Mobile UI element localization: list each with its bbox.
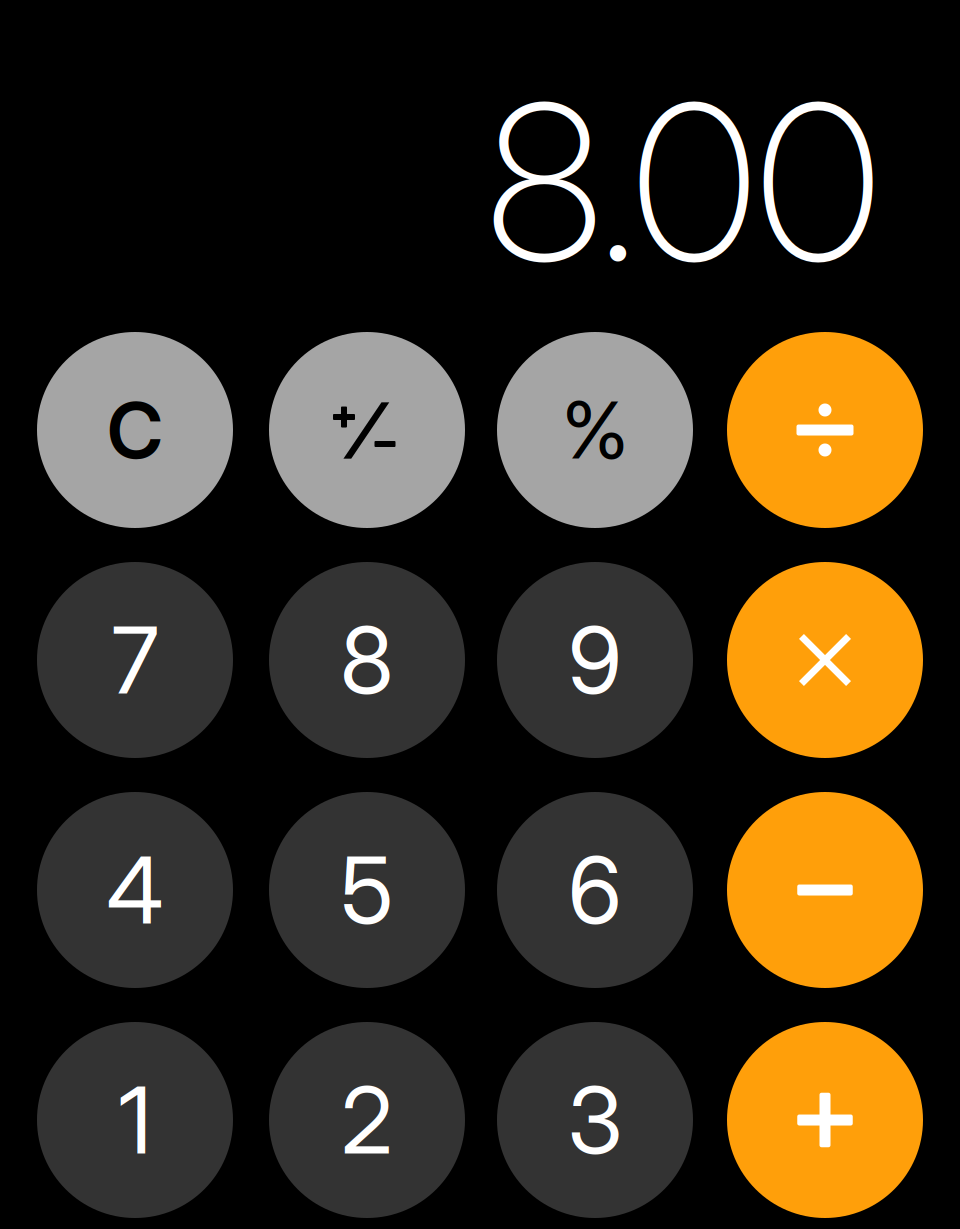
button[interactable]: 4 — [37, 792, 233, 988]
button[interactable]: 1 — [37, 1022, 233, 1218]
button[interactable]: C — [37, 332, 233, 528]
staticText: 8.00 — [486, 51, 880, 313]
button[interactable]: % — [497, 332, 693, 528]
staticText: 2 — [341, 1064, 393, 1176]
staticText: 5 — [340, 834, 393, 946]
button[interactable]: Plus minus — [269, 332, 465, 528]
button[interactable]: 2 — [269, 1022, 465, 1218]
staticText: 7 — [111, 604, 158, 716]
button[interactable]: 9 — [497, 562, 693, 758]
button[interactable]: Divide — [727, 332, 923, 528]
button[interactable]: 5 — [269, 792, 465, 988]
staticText: 6 — [568, 834, 622, 946]
button[interactable]: 6 — [497, 792, 693, 988]
button[interactable]: Minus — [727, 792, 923, 988]
button[interactable]: 3 — [497, 1022, 693, 1218]
staticText: 9 — [568, 604, 622, 716]
button[interactable]: Multiply — [727, 562, 923, 758]
button[interactable]: Plus — [727, 1022, 923, 1218]
button[interactable]: 7 — [37, 562, 233, 758]
button[interactable]: 8 — [269, 562, 465, 758]
staticText: % — [562, 382, 628, 478]
staticText: 4 — [106, 834, 163, 946]
staticText: C — [107, 383, 163, 477]
staticText: 3 — [567, 1064, 622, 1176]
staticText: 1 — [118, 1064, 151, 1176]
staticText: 8 — [340, 604, 394, 716]
